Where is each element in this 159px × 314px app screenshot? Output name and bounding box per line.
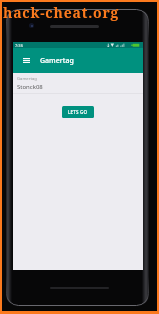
- staticText: Stonck08: [17, 83, 43, 91]
- button[interactable]: LETS GO: [62, 106, 94, 118]
- button[interactable]: Open navigation menu: [14, 48, 39, 73]
- staticText: Gamertag: [17, 76, 37, 82]
- staticText: hack-cheat.org: [3, 3, 120, 22]
- staticText: LETS GO: [68, 109, 88, 115]
- staticText: 7:36: [15, 43, 23, 48]
- button[interactable]: Gamertag: [17, 76, 139, 91]
- staticText: Gamertag: [40, 56, 74, 66]
